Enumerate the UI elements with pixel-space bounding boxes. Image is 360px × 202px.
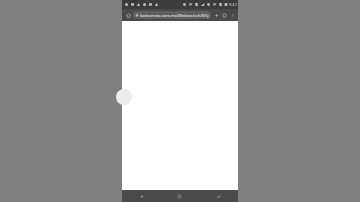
staticText: livetservice.com.mx/lifetime/sch/69.j — [140, 13, 209, 18]
staticText: 9:41 — [229, 2, 237, 7]
button[interactable]: Tabs — [220, 11, 228, 19]
button[interactable]: New tab — [212, 11, 220, 19]
button[interactable]: Home — [160, 190, 199, 202]
button[interactable]: Home — [124, 11, 132, 19]
button[interactable]: Back — [122, 190, 160, 202]
button[interactable]: Recent apps — [199, 190, 238, 202]
button[interactable]: livetservice.com.mx/lifetime/sch/69.j — [133, 11, 211, 19]
button[interactable]: More options — [228, 11, 236, 19]
